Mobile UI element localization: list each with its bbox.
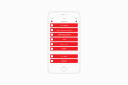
- button[interactable]: SETTINGS: [50, 54, 78, 58]
- staticText: ANOTHER LIST ITEM: [57, 34, 70, 36]
- button[interactable]: CATEGORIES: [50, 23, 78, 27]
- button[interactable]: LOG OUT: [50, 59, 78, 63]
- button[interactable]: MORE ITEMS: [50, 42, 78, 46]
- button[interactable]: ANOTHER LIST ITEM: [50, 33, 78, 37]
- button[interactable]: ITEM: [50, 37, 78, 41]
- staticText: CATEGORIES: [59, 24, 68, 26]
- staticText: 9:41: [63, 18, 66, 20]
- staticText: SHORT: [61, 48, 66, 50]
- staticText: LOG OUT: [61, 60, 67, 62]
- staticText: ITEM: [62, 38, 65, 40]
- button[interactable]: SHORT: [50, 47, 78, 51]
- staticText: MAIN MENU: [60, 20, 67, 22]
- staticText: SOMETHING A BIT LONGER: [55, 29, 72, 31]
- staticText: MORE ITEMS: [60, 43, 68, 45]
- button[interactable]: Menu: [51, 20, 53, 22]
- staticText: SETTINGS: [60, 55, 67, 57]
- button[interactable]: Home: [62, 67, 66, 71]
- button[interactable]: SOMETHING A BIT LONGER: [50, 28, 78, 32]
